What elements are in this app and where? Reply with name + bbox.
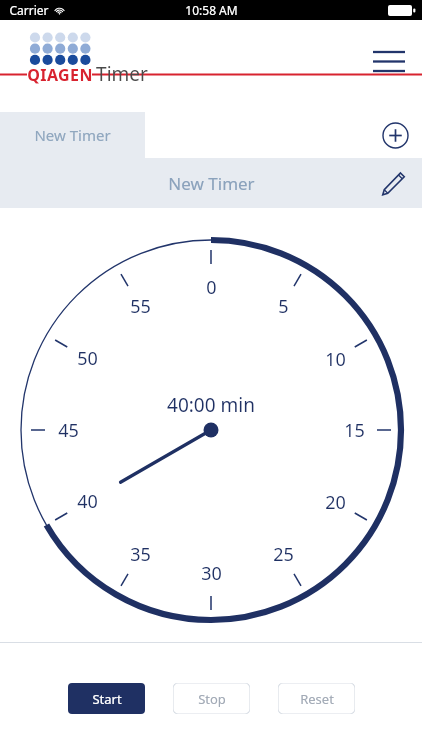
staticText: QIAGEN	[27, 64, 93, 86]
staticText: 40:00 min	[167, 392, 255, 418]
staticText: 50	[77, 346, 98, 370]
staticText: New Timer	[168, 172, 255, 195]
staticText: 5	[278, 294, 289, 318]
staticText: 25	[273, 542, 294, 566]
staticText: 45	[58, 418, 79, 442]
button[interactable]: Reset	[278, 683, 355, 714]
staticText: 30	[201, 561, 222, 585]
staticText: 10	[325, 347, 346, 371]
button[interactable]: Start	[68, 683, 145, 714]
staticText: 40	[77, 489, 98, 513]
staticText: 35	[130, 542, 151, 566]
staticText: Stop	[198, 690, 226, 708]
staticText: New Timer	[34, 125, 111, 145]
button[interactable]: New Timer	[0, 112, 145, 158]
button[interactable]: Add timer	[373, 113, 417, 157]
staticText: Carrier	[9, 2, 49, 18]
staticText: 10:58 AM	[185, 2, 238, 18]
staticText: 55	[130, 294, 151, 318]
staticText: Timer	[96, 61, 148, 87]
staticText: 15	[344, 418, 365, 442]
staticText: Start	[92, 690, 122, 708]
button[interactable]: Menu	[366, 45, 412, 77]
staticText: Reset	[300, 690, 334, 708]
button[interactable]: Stop	[173, 683, 250, 714]
button[interactable]: Edit timer name	[372, 162, 414, 204]
staticText: 0	[206, 275, 217, 299]
staticText: 20	[325, 490, 346, 514]
